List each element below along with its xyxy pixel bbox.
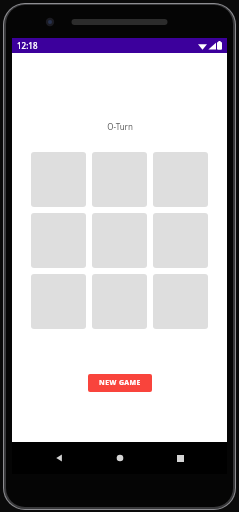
button[interactable]: NEW GAME	[88, 374, 152, 392]
button[interactable]: Home	[107, 445, 133, 471]
button[interactable]: Recent apps	[167, 445, 193, 471]
staticText: NEW GAME	[99, 378, 141, 388]
button[interactable]: Back	[46, 445, 72, 471]
staticText: O-Turn	[107, 121, 133, 132]
staticText: 12:18	[17, 40, 38, 51]
